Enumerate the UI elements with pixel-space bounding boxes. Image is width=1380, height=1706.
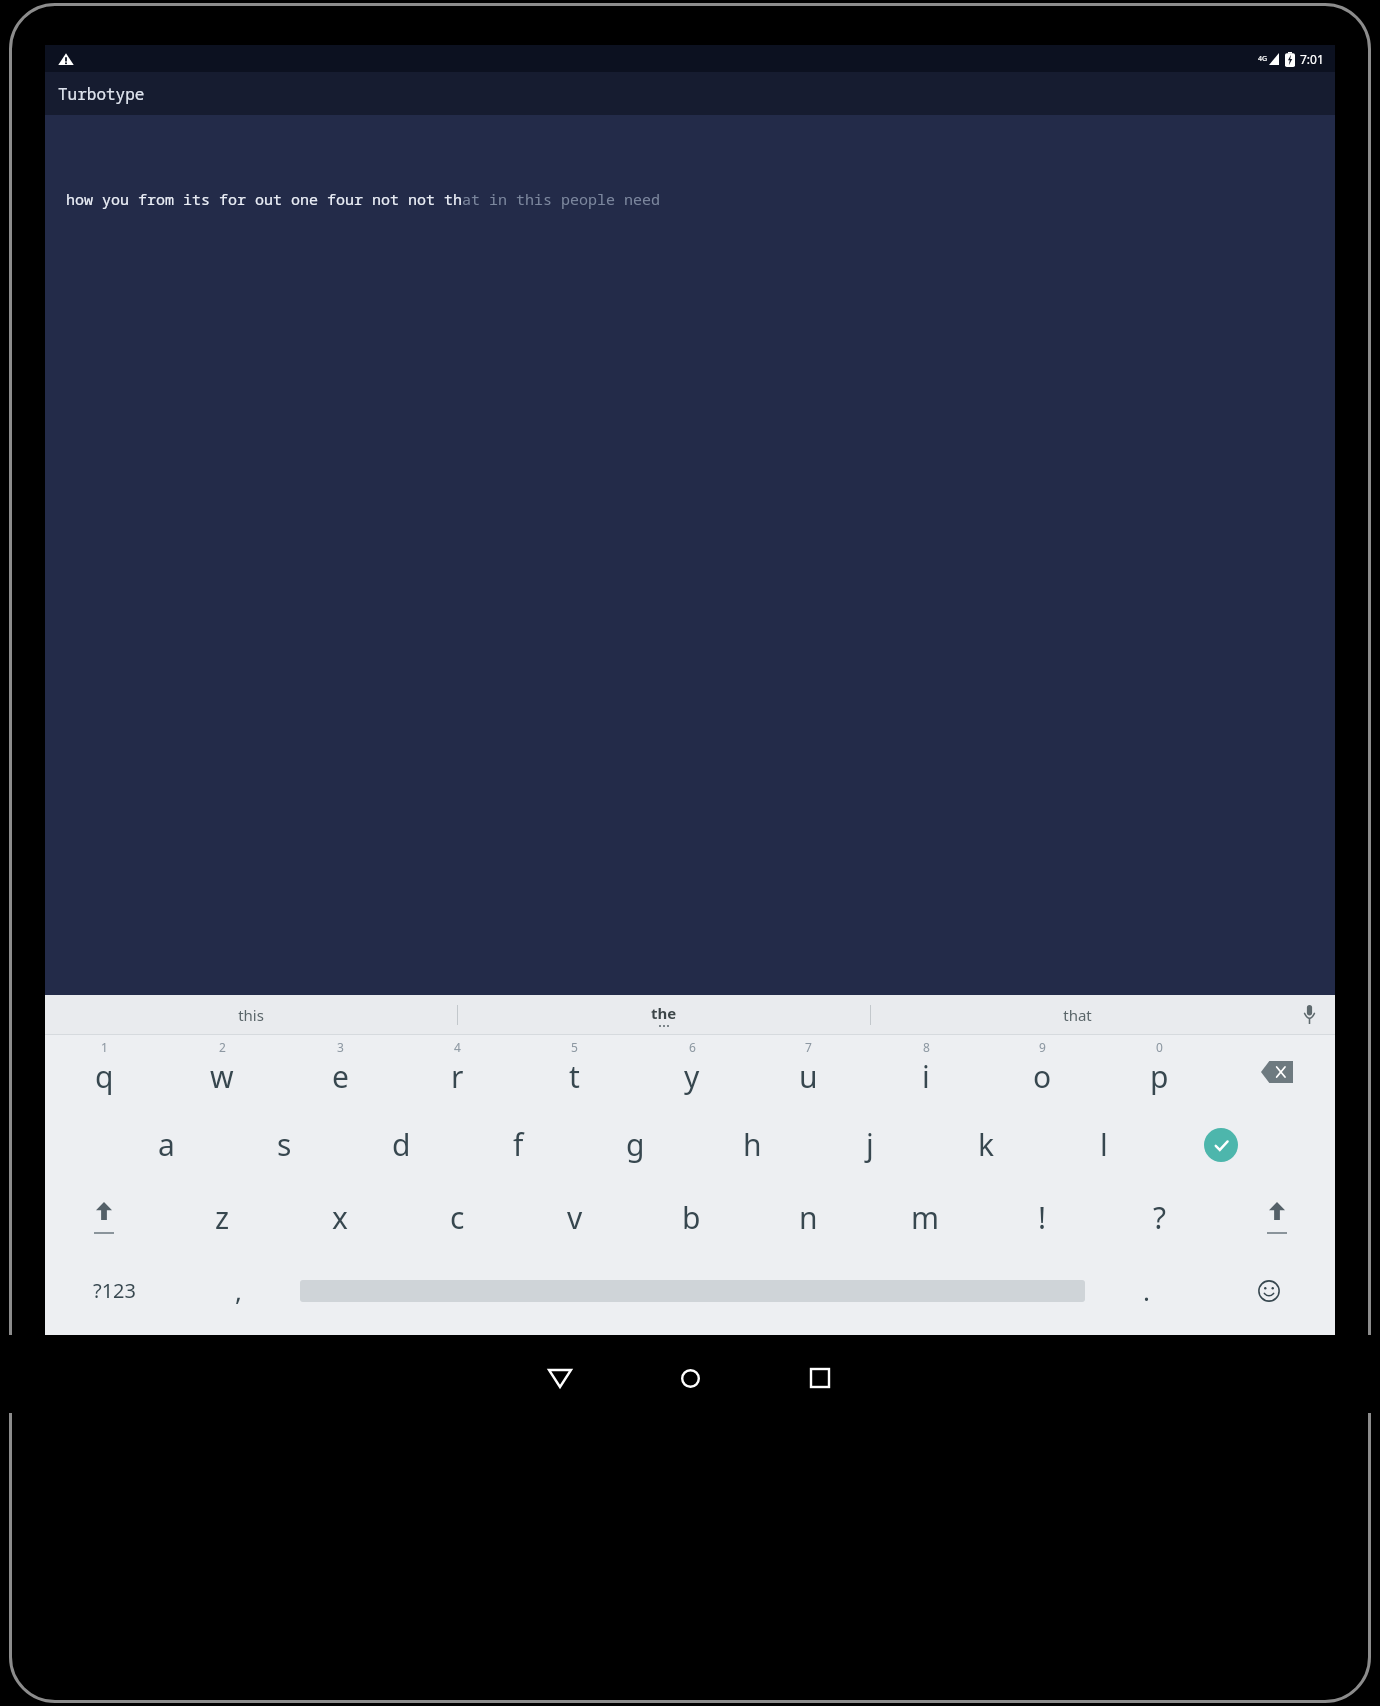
button[interactable]: ? (1101, 1181, 1218, 1254)
button[interactable]: j (811, 1108, 928, 1181)
button[interactable]: Space (294, 1254, 1091, 1327)
button[interactable]: Back (531, 1349, 589, 1407)
staticText: w (210, 1056, 234, 1097)
staticText: o (1033, 1056, 1052, 1097)
staticText: that (1063, 1005, 1092, 1025)
button[interactable]: 6 (633, 1035, 750, 1108)
button[interactable]: Backspace (1218, 1035, 1335, 1108)
staticText: f (513, 1124, 524, 1165)
staticText: j (866, 1124, 874, 1165)
button[interactable]: c (399, 1181, 516, 1254)
button[interactable]: ! (984, 1181, 1101, 1254)
staticText: y (684, 1056, 700, 1097)
staticText: z (215, 1197, 230, 1238)
button[interactable]: Enter (1162, 1108, 1279, 1181)
staticText: g (626, 1124, 645, 1165)
button[interactable]: Shift (45, 1181, 163, 1254)
staticText: ?123 (93, 1277, 136, 1304)
staticText: l (1100, 1124, 1108, 1165)
staticText: i (922, 1056, 930, 1097)
staticText: r (451, 1056, 464, 1097)
button[interactable]: z (163, 1181, 281, 1254)
button[interactable]: 2 (163, 1035, 281, 1108)
button[interactable]: Shift (1218, 1181, 1335, 1254)
staticText: s (277, 1124, 292, 1165)
staticText: x (332, 1197, 348, 1238)
button[interactable]: v (516, 1181, 633, 1254)
button[interactable]: g (577, 1108, 694, 1181)
staticText: u (799, 1056, 818, 1097)
button[interactable]: 5 (516, 1035, 633, 1108)
button[interactable]: the (458, 995, 870, 1035)
staticText: 5 (571, 1039, 578, 1055)
button[interactable]: m (867, 1181, 984, 1254)
staticText: 1 (101, 1039, 108, 1055)
staticText: h (743, 1124, 762, 1165)
staticText: 2 (219, 1039, 226, 1055)
button[interactable]: . (1091, 1254, 1202, 1327)
staticText: 4G (1258, 54, 1268, 64)
button[interactable]: ?123 (45, 1254, 183, 1327)
button[interactable]: d (343, 1108, 460, 1181)
button[interactable]: this (45, 995, 457, 1035)
button[interactable]: s (225, 1108, 343, 1181)
staticText: e (332, 1056, 349, 1097)
button[interactable]: b (633, 1181, 750, 1254)
staticText: Turbotype (58, 83, 145, 105)
staticText: v (567, 1197, 583, 1238)
staticText: n (799, 1197, 818, 1238)
staticText: the (651, 1003, 677, 1023)
staticText: 8 (923, 1039, 930, 1055)
staticText: t (569, 1056, 580, 1097)
staticText: q (95, 1056, 114, 1097)
button[interactable]: Home (661, 1349, 719, 1407)
button[interactable]: , (183, 1254, 294, 1327)
button[interactable]: that (871, 995, 1283, 1035)
staticText: 6 (689, 1039, 696, 1055)
button[interactable]: 8 (867, 1035, 984, 1108)
button[interactable]: 4 (399, 1035, 516, 1108)
button[interactable]: a (107, 1108, 225, 1181)
staticText: how you from its for out one four not no… (66, 189, 661, 209)
button[interactable]: 1 (45, 1035, 163, 1108)
staticText: 9 (1039, 1039, 1046, 1055)
button[interactable]: n (750, 1181, 867, 1254)
staticText: this (238, 1005, 264, 1025)
staticText: 7:01 (1300, 51, 1324, 67)
button[interactable]: 7 (750, 1035, 867, 1108)
button[interactable]: 3 (281, 1035, 399, 1108)
button[interactable]: 9 (984, 1035, 1101, 1108)
button[interactable]: 0 (1101, 1035, 1218, 1108)
staticText: k (978, 1124, 995, 1165)
button[interactable]: h (694, 1108, 811, 1181)
staticText: 3 (337, 1039, 344, 1055)
staticText: c (450, 1197, 465, 1238)
staticText: p (1150, 1056, 1169, 1097)
button[interactable]: k (928, 1108, 1045, 1181)
staticText: ? (1153, 1197, 1167, 1238)
staticText: b (682, 1197, 701, 1238)
button[interactable]: Voice input (1283, 995, 1335, 1035)
staticText: ! (1038, 1197, 1047, 1238)
staticText: . (1143, 1273, 1150, 1308)
button[interactable]: Recents (791, 1349, 849, 1407)
staticText: d (392, 1124, 411, 1165)
staticText: 0 (1156, 1039, 1163, 1055)
staticText: a (158, 1124, 175, 1165)
staticText: 7 (805, 1039, 812, 1055)
staticText: , (235, 1273, 242, 1308)
button[interactable]: x (281, 1181, 399, 1254)
staticText: m (911, 1197, 940, 1238)
button[interactable]: l (1045, 1108, 1162, 1181)
button[interactable]: Emoji (1202, 1254, 1335, 1327)
staticText: 4 (454, 1039, 461, 1055)
button[interactable]: f (460, 1108, 577, 1181)
